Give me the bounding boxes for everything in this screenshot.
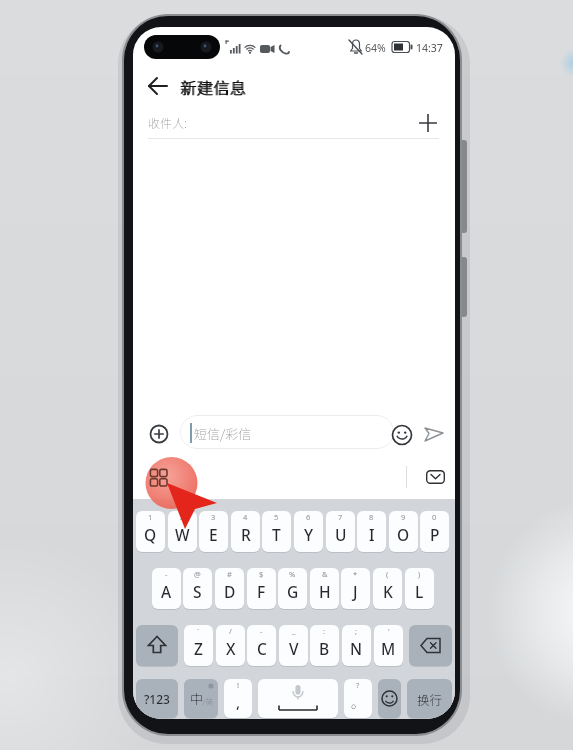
- staticText: D: [224, 581, 236, 602]
- staticText: *: [353, 569, 358, 579]
- button[interactable]: /: [216, 625, 245, 666]
- staticText: X: [226, 638, 236, 659]
- staticText: &: [322, 569, 328, 579]
- staticText: 64%: [365, 41, 386, 55]
- staticText: 8: [369, 512, 374, 522]
- button[interactable]: [378, 679, 401, 718]
- staticText: N: [350, 638, 363, 659]
- button[interactable]: [409, 625, 452, 666]
- staticText: (: [386, 569, 389, 579]
- button[interactable]: [180, 415, 394, 449]
- staticText: -: [260, 626, 263, 636]
- staticText: J: [353, 581, 358, 602]
- button[interactable]: 2: [168, 511, 197, 552]
- staticText: W: [175, 524, 190, 545]
- button[interactable]: [391, 424, 413, 446]
- staticText: 2: [180, 512, 185, 522]
- staticText: %: [289, 569, 296, 579]
- staticText: 换行: [417, 690, 443, 708]
- button[interactable]: 5: [262, 511, 291, 552]
- button[interactable]: -: [152, 568, 181, 609]
- staticText: L: [415, 581, 424, 602]
- button[interactable]: 4: [231, 511, 260, 552]
- staticText: 短信/彩信: [194, 424, 252, 443]
- button[interactable]: ): [405, 568, 434, 609]
- button[interactable]: 7: [326, 511, 355, 552]
- staticText: 。: [351, 692, 365, 712]
- button[interactable]: %: [278, 568, 307, 609]
- button[interactable]: 1: [136, 511, 165, 552]
- staticText: M: [381, 638, 396, 659]
- staticText: ': [388, 626, 390, 636]
- staticText: ;: [355, 626, 358, 636]
- button[interactable]: [421, 423, 447, 443]
- button[interactable]: [136, 625, 178, 666]
- button[interactable]: [426, 470, 445, 484]
- button[interactable]: [143, 73, 183, 101]
- button[interactable]: ;: [342, 625, 371, 666]
- staticText: /: [229, 626, 232, 636]
- staticText: ,: [236, 692, 241, 712]
- staticText: R: [241, 524, 251, 545]
- staticText: ): [418, 569, 421, 579]
- button[interactable]: &: [310, 568, 339, 609]
- button[interactable]: 中: [184, 679, 218, 718]
- staticText: I: [369, 524, 375, 545]
- button[interactable]: @: [183, 568, 212, 609]
- button[interactable]: 3: [199, 511, 228, 552]
- staticText: E: [209, 524, 218, 545]
- button[interactable]: :: [310, 625, 339, 666]
- staticText: !: [237, 680, 240, 690]
- button[interactable]: *: [341, 568, 370, 609]
- staticText: 新建信息: [181, 75, 248, 98]
- button[interactable]: 8: [357, 511, 386, 552]
- button[interactable]: [141, 453, 241, 563]
- staticText: 收件人:: [148, 114, 187, 131]
- button[interactable]: #: [215, 568, 244, 609]
- staticText: T: [272, 524, 281, 545]
- staticText: -: [165, 569, 168, 579]
- staticText: 7: [338, 512, 343, 522]
- button[interactable]: `: [184, 625, 213, 666]
- button[interactable]: ?123: [136, 679, 178, 718]
- staticText: Y: [304, 524, 314, 545]
- button[interactable]: 0: [420, 511, 449, 552]
- staticText: 6: [306, 512, 311, 522]
- button[interactable]: ': [374, 625, 403, 666]
- staticText: /英: [202, 696, 214, 708]
- staticText: 4: [243, 512, 248, 522]
- button[interactable]: [416, 111, 440, 135]
- button[interactable]: !: [224, 679, 252, 718]
- button[interactable]: [258, 679, 338, 718]
- staticText: 新建信息: [180, 75, 247, 98]
- staticText: C: [257, 638, 267, 659]
- staticText: K: [383, 581, 393, 602]
- staticText: Z: [194, 638, 203, 659]
- staticText: #: [227, 569, 232, 579]
- button[interactable]: $: [247, 568, 276, 609]
- staticText: Q: [144, 524, 157, 545]
- button[interactable]: [145, 420, 173, 448]
- staticText: _: [292, 626, 296, 636]
- staticText: 中: [190, 689, 204, 708]
- button[interactable]: -: [247, 625, 276, 666]
- staticText: 9: [401, 512, 406, 522]
- staticText: V: [289, 638, 299, 659]
- staticText: 0: [432, 512, 437, 522]
- button[interactable]: (: [373, 568, 402, 609]
- staticText: `: [197, 626, 200, 636]
- button[interactable]: ?: [344, 679, 372, 718]
- staticText: 中: [190, 689, 204, 708]
- staticText: 14:37: [416, 41, 443, 55]
- staticText: U: [335, 524, 347, 545]
- staticText: ?123: [144, 691, 170, 707]
- button[interactable]: 9: [389, 511, 418, 552]
- staticText: 5: [274, 512, 279, 522]
- staticText: B: [319, 638, 330, 659]
- staticText: F: [257, 581, 266, 602]
- staticText: O: [397, 524, 410, 545]
- button[interactable]: 6: [294, 511, 323, 552]
- staticText: 换行: [417, 690, 443, 708]
- button[interactable]: 换行: [407, 679, 452, 718]
- button[interactable]: _: [279, 625, 308, 666]
